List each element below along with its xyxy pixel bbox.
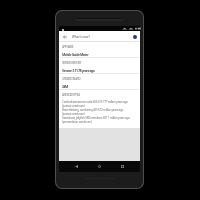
staticText: Cerebral awesomes code 456 415 777 milli… bbox=[62, 100, 130, 124]
button[interactable]: UPDATED IN AND bbox=[59, 74, 140, 90]
staticText: UPDATED IN AND bbox=[62, 77, 81, 81]
button[interactable]: Account bbox=[129, 31, 140, 42]
staticText: 24M bbox=[62, 84, 68, 89]
button[interactable]: Back bbox=[71, 161, 82, 172]
button[interactable]: Recents bbox=[117, 161, 128, 172]
staticText: Mobile Guide Mater bbox=[62, 52, 89, 57]
button[interactable]: VERSION HISTORY bbox=[59, 58, 140, 74]
staticText: ANDROID TYPE A bbox=[62, 93, 80, 97]
button[interactable]: Home bbox=[94, 161, 105, 172]
button[interactable]: Back bbox=[59, 31, 70, 42]
staticText: APP NAME bbox=[62, 45, 74, 49]
button[interactable]: APP NAME bbox=[59, 42, 140, 58]
staticText: What's new? bbox=[72, 35, 90, 39]
staticText: Version 1.11.78 years ago bbox=[62, 68, 95, 73]
staticText: VERSION HISTORY bbox=[62, 61, 81, 65]
